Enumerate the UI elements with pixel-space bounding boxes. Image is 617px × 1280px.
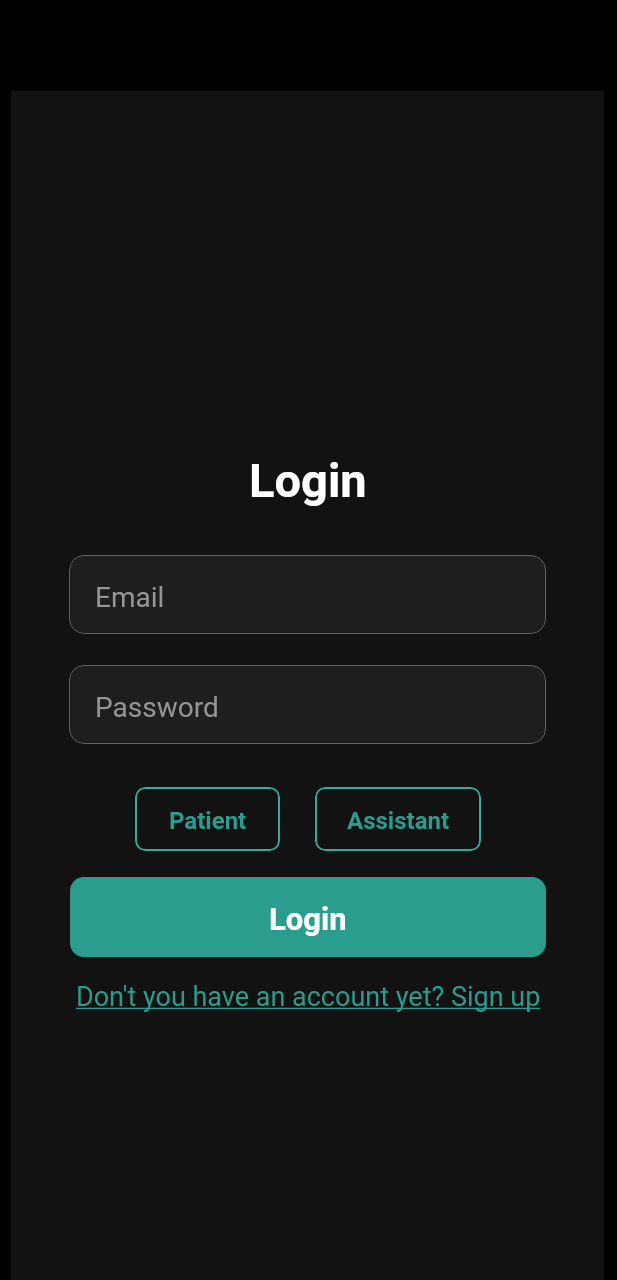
staticText: Email <box>95 581 165 614</box>
button[interactable]: Email input field <box>69 555 546 634</box>
staticText: Don't you have an account yet? Sign up <box>76 981 541 1013</box>
staticText: Login <box>249 453 367 508</box>
staticText: Assistant <box>347 807 450 835</box>
button[interactable]: Don't you have an account yet? Sign up <box>48 981 568 1021</box>
button[interactable]: Password input field <box>69 665 546 744</box>
staticText: Patient <box>169 807 247 835</box>
button[interactable]: Assistant <box>315 787 481 851</box>
button[interactable]: Patient <box>135 787 280 851</box>
button[interactable]: Login <box>70 877 546 957</box>
staticText: Password <box>95 691 219 724</box>
staticText: Login <box>269 901 347 937</box>
